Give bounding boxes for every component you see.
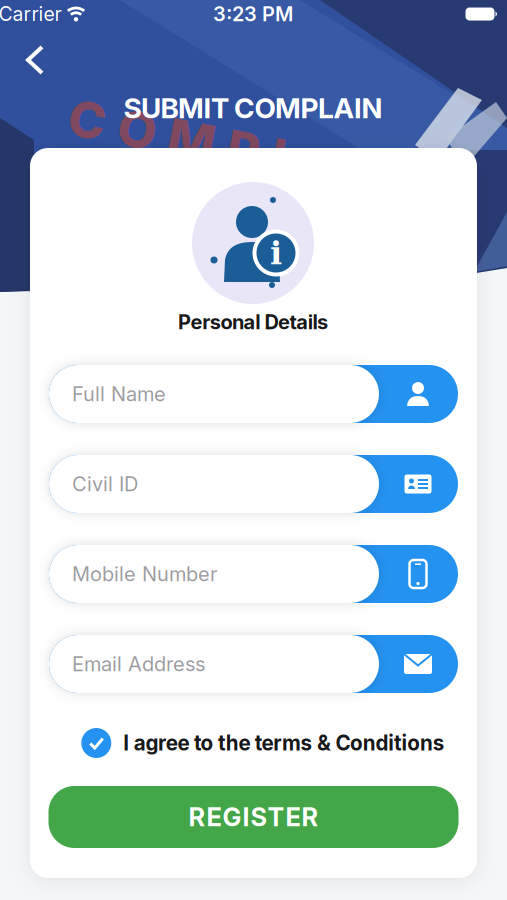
- button[interactable]: Full Name: [49, 365, 458, 423]
- staticText: Full Name: [72, 382, 166, 406]
- button[interactable]: REGISTER: [48, 786, 458, 848]
- button[interactable]: I agree to the terms & Conditions: [81, 728, 445, 758]
- staticText: Mobile Number: [72, 562, 217, 586]
- staticText: Email Address: [72, 652, 205, 676]
- button[interactable]: Email Address: [49, 635, 458, 693]
- staticText: I agree to the terms & Conditions: [123, 730, 445, 755]
- staticText: Personal Details: [178, 310, 328, 334]
- button[interactable]: Civil ID: [49, 455, 458, 513]
- button[interactable]: Back: [14, 33, 58, 87]
- staticText: 3:23 PM: [213, 2, 293, 26]
- staticText: i: [270, 234, 282, 272]
- button[interactable]: Mobile Number: [49, 545, 458, 603]
- staticText: Carrier: [0, 2, 61, 26]
- staticText: COMPLAIN: [65, 120, 428, 182]
- staticText: REGISTER: [188, 802, 318, 832]
- staticText: Civil ID: [72, 472, 138, 496]
- staticText: SUBMIT COMPLAIN: [123, 91, 382, 125]
